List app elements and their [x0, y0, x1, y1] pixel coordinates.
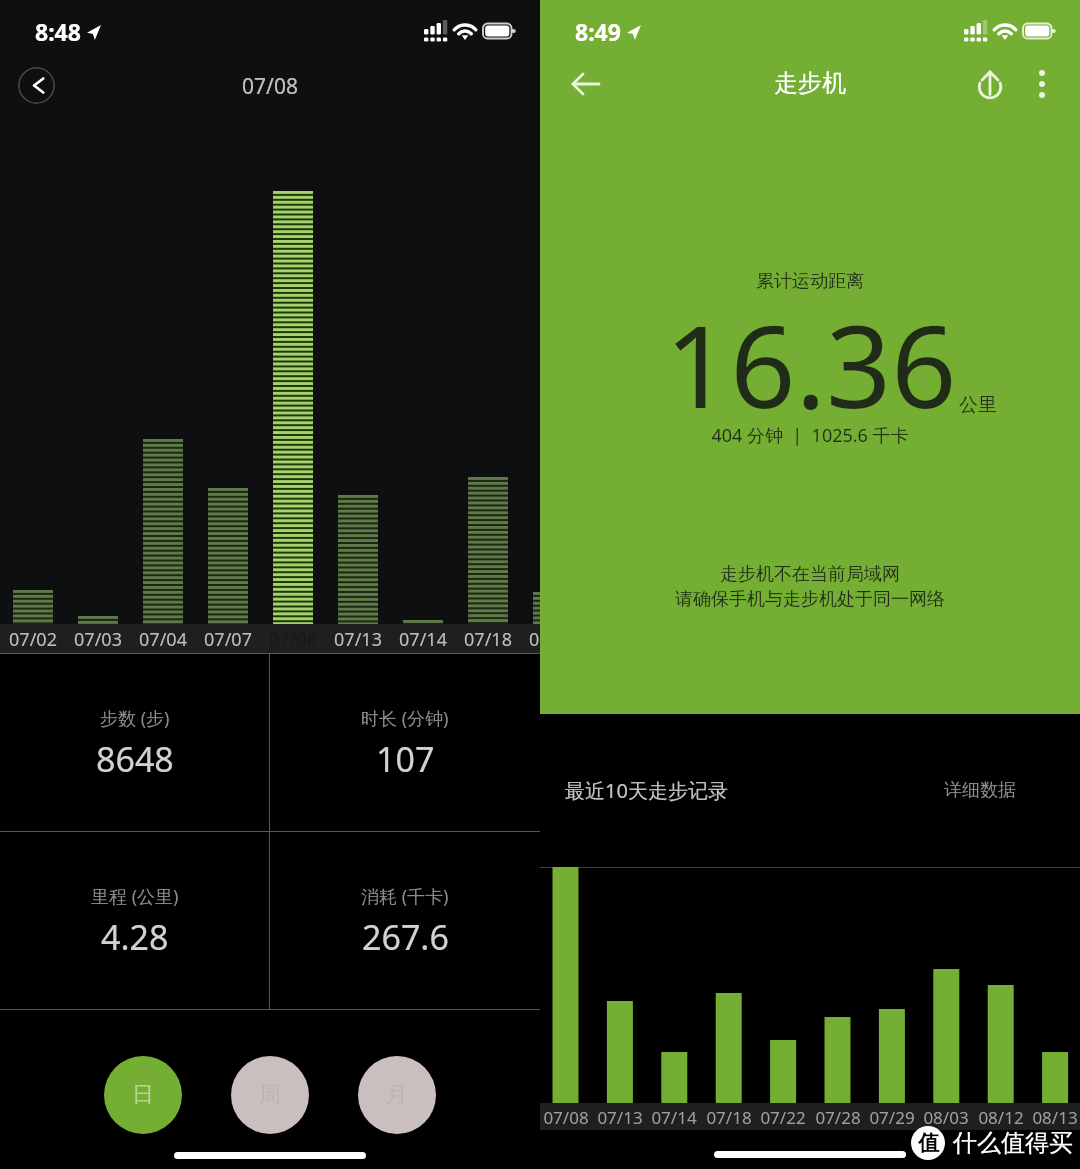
staticText: 详细数据 [944, 779, 1016, 802]
button[interactable]: Share [966, 60, 1014, 108]
staticText: 日 [132, 1081, 154, 1109]
staticText: 走步机 [540, 68, 1080, 98]
staticText: 8:48 [35, 16, 81, 47]
staticText: 07/13 [588, 1106, 652, 1129]
staticText: 07/07 [196, 627, 260, 652]
staticText: 07/22 [751, 1106, 815, 1129]
staticText: 07/14 [642, 1106, 706, 1129]
staticText: 周 [259, 1081, 281, 1109]
button[interactable]: Back [562, 60, 610, 108]
staticText: 07/18 [697, 1106, 761, 1129]
button[interactable]: 详细数据 [920, 714, 1080, 867]
staticText: 07/28 [806, 1106, 870, 1129]
button[interactable]: 消耗 (千卡) [270, 832, 540, 1009]
staticText: 07/08 [0, 72, 540, 101]
staticText: 累计运动距离 [540, 270, 1080, 293]
staticText: 什么值得买 [953, 1128, 1073, 1158]
staticText: 月 [386, 1081, 408, 1109]
staticText: 07/04 [131, 627, 195, 652]
staticText: 值 [918, 1130, 939, 1156]
button[interactable]: More options [1018, 60, 1066, 108]
staticText: 08/03 [914, 1106, 978, 1129]
staticText: 07/19 [521, 627, 585, 652]
staticText: 最近10天走步记录 [565, 777, 728, 804]
staticText: 07/08 [534, 1106, 598, 1129]
staticText: 消耗 (千卡) [361, 884, 449, 909]
staticText: 08/12 [969, 1106, 1033, 1129]
staticText: 267.6 [362, 914, 449, 960]
staticText: 请确保手机与走步机处于同一网络 [540, 588, 1080, 611]
button[interactable]: 月 [358, 1056, 436, 1134]
staticText: 4.28 [101, 914, 169, 960]
staticText: 里程 (公里) [91, 884, 179, 909]
button[interactable]: 最近10天走步记录 [540, 714, 920, 867]
button[interactable]: 里程 (公里) [0, 832, 269, 1009]
button[interactable]: 日 [104, 1056, 182, 1134]
staticText: 08/13 [1023, 1106, 1080, 1129]
staticText: 404 分钟 | 1025.6 千卡 [540, 423, 1080, 448]
button[interactable]: 周 [231, 1056, 309, 1134]
staticText: 107 [376, 736, 435, 782]
staticText: 8:49 [575, 16, 621, 47]
button[interactable]: Back [18, 67, 55, 104]
staticText: 07/02 [1, 627, 65, 652]
staticText: 公里 [959, 393, 997, 417]
staticText: 16.36 [665, 286, 957, 441]
button[interactable]: 时长 (分钟) [270, 654, 540, 831]
staticText: 时长 (分钟) [361, 706, 449, 731]
staticText: 步数 (步) [100, 706, 170, 731]
staticText: 07/13 [326, 627, 390, 652]
button[interactable]: 步数 (步) [0, 654, 269, 831]
staticText: 07/03 [66, 627, 130, 652]
staticText: 07/29 [860, 1106, 924, 1129]
staticText: 走步机不在当前局域网 [540, 563, 1080, 586]
staticText: 07/14 [391, 627, 455, 652]
staticText: 8648 [96, 736, 174, 782]
staticText: 07/18 [456, 627, 520, 652]
